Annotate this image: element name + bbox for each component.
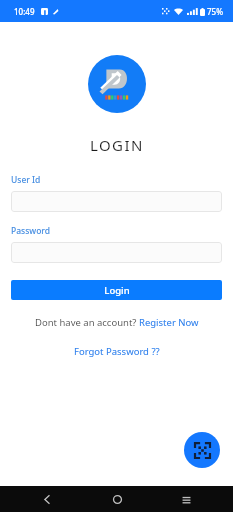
button[interactable] (11, 191, 222, 212)
staticText: 10:49 (14, 6, 35, 17)
staticText: User Id (11, 174, 41, 186)
staticText: LOGIN (90, 135, 144, 155)
staticText: Register Now (139, 316, 199, 329)
staticText: 75% (207, 6, 223, 17)
button[interactable]: Forgot Password ?? (68, 343, 166, 360)
staticText: Login (104, 284, 130, 297)
button[interactable]: Home (94, 486, 140, 512)
button[interactable] (11, 242, 222, 263)
staticText: Dont have an account? (35, 316, 139, 329)
button[interactable]: Scan QR code (184, 432, 220, 468)
button[interactable]: Recent apps (163, 486, 209, 512)
staticText: Forgot Password ?? (74, 345, 160, 358)
button[interactable]: DailyPay logo (88, 55, 146, 113)
button[interactable]: Back (24, 486, 70, 512)
staticText: Password (11, 225, 51, 237)
button[interactable]: Register Now (139, 316, 199, 329)
button[interactable]: Login (11, 280, 222, 300)
